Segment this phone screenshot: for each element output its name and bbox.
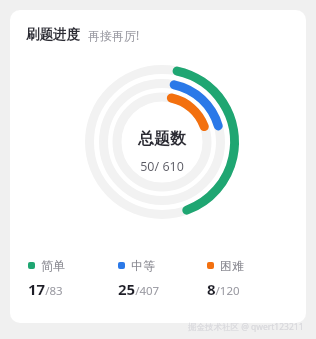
staticText: 50/ 610 xyxy=(140,158,184,175)
staticText: 总题数 xyxy=(138,129,186,149)
staticText: 25/407 xyxy=(118,279,160,299)
staticText: 再接再厉! xyxy=(88,27,140,43)
other: 简单 xyxy=(28,262,35,269)
staticText: 中等 xyxy=(131,258,155,273)
staticText: 17/83 xyxy=(28,279,63,299)
staticText: 困难 xyxy=(220,258,244,273)
other: 困难 xyxy=(207,262,214,269)
button[interactable]: 简单 xyxy=(28,256,118,301)
button[interactable]: 中等 xyxy=(118,256,207,301)
staticText: 8/120 xyxy=(207,279,240,299)
button[interactable]: 困难 xyxy=(207,256,296,301)
staticText: 掘金技术社区 @ qwert123211 xyxy=(188,321,304,333)
staticText: 简单 xyxy=(41,258,65,273)
other: 中等 xyxy=(118,262,125,269)
staticText: 刷题进度 xyxy=(26,26,80,43)
